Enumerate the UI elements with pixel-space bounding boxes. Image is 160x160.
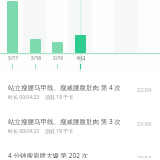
staticText: 3/19 bbox=[46, 55, 70, 62]
staticText: 4 分钟瘦肩膀大爆 第 202 次 bbox=[8, 151, 89, 158]
button[interactable]: 3/17 bbox=[0, 0, 160, 72]
staticText: 时长 00:04:23 bbox=[8, 94, 40, 101]
staticText: 站立瘦腰马甲线、瘦减腰腹肚肉 第 3 次 bbox=[8, 117, 121, 126]
button[interactable]: 站立瘦腰马甲线、瘦减腰腹肚肉 第 4 次 bbox=[0, 81, 160, 103]
staticText: 今日 bbox=[69, 55, 93, 61]
staticText: 3/18 bbox=[24, 55, 48, 62]
staticText: 21:59 bbox=[137, 120, 152, 127]
button[interactable]: 4 分钟瘦肩膀大爆 第 202 次 bbox=[0, 149, 160, 160]
staticText: 21:54 bbox=[137, 154, 152, 158]
staticText: 站立瘦腰马甲线、瘦减腰腹肚肉 第 4 次 bbox=[8, 83, 121, 92]
button[interactable]: 站立瘦腰马甲线、瘦减腰腹肚肉 第 3 次 bbox=[0, 115, 160, 137]
staticText: 消耗 19 千卡 bbox=[45, 128, 74, 135]
staticText: 3/17 bbox=[1, 55, 25, 62]
staticText: 消耗 19 千卡 bbox=[45, 94, 74, 101]
staticText: 时长 00:04:23 bbox=[8, 128, 40, 135]
staticText: 22:04 bbox=[137, 86, 152, 93]
